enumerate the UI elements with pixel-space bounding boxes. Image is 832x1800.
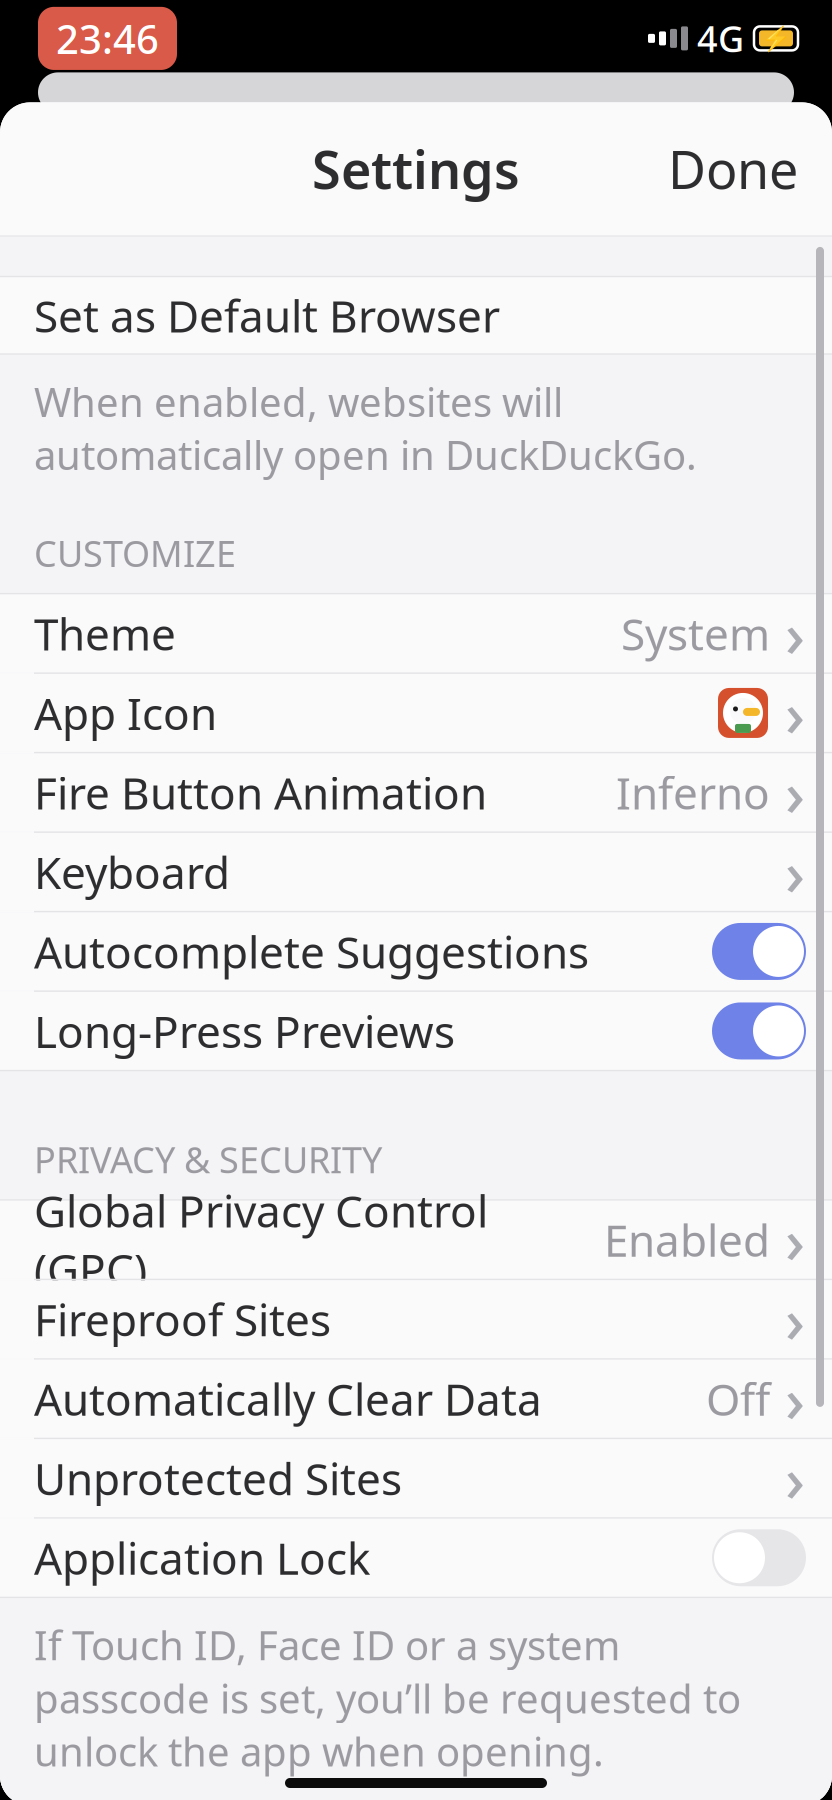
button[interactable]: Unprotected Sites — [0, 1439, 832, 1517]
staticText: Enabled — [604, 1210, 770, 1269]
staticText: Long-Press Previews — [34, 1002, 455, 1060]
staticText: CUSTOMIZE — [34, 529, 236, 577]
staticText: Keyboard — [34, 843, 230, 901]
staticText: Application Lock — [34, 1528, 370, 1587]
button[interactable]: Done — [648, 122, 818, 215]
staticText: App Icon — [34, 684, 217, 742]
staticText: Unprotected Sites — [34, 1449, 402, 1507]
staticText: 4G — [697, 14, 744, 62]
button[interactable]: Automatically Clear Data — [0, 1360, 832, 1438]
staticText: Done — [668, 134, 798, 203]
button[interactable]: App Icon — [0, 674, 832, 752]
staticText: › — [785, 593, 805, 674]
button[interactable]: Fireproof Sites — [0, 1280, 832, 1358]
staticText: When enabled, websites will automaticall… — [34, 375, 697, 481]
staticText: Off — [706, 1369, 770, 1428]
staticText: Set as Default Browser — [34, 286, 500, 345]
staticText: › — [785, 752, 805, 833]
button[interactable]: Application Lock — [0, 1519, 832, 1597]
staticText: Theme — [34, 604, 176, 663]
staticText: › — [785, 831, 805, 913]
staticText: › — [785, 672, 805, 754]
staticText: Inferno — [616, 763, 770, 822]
button[interactable]: Theme — [0, 594, 832, 672]
staticText: 23:46 — [56, 12, 159, 65]
button[interactable]: Global Privacy Control (GPC) — [0, 1201, 832, 1279]
staticText: › — [785, 1199, 805, 1280]
staticText: Fire Button Animation — [34, 763, 487, 822]
staticText: › — [785, 1278, 805, 1360]
button[interactable]: Fire Button Animation — [0, 753, 832, 831]
staticText: System — [621, 604, 770, 663]
staticText: Global Privacy Control (GPC) — [34, 1181, 488, 1298]
button[interactable]: Set as Default Browser — [0, 277, 832, 353]
staticText: Fireproof Sites — [34, 1290, 331, 1348]
staticText: Settings — [312, 134, 520, 203]
staticText: › — [785, 1437, 805, 1519]
staticText: ⚡ — [761, 25, 791, 52]
staticText: Automatically Clear Data — [34, 1369, 542, 1428]
staticText: PRIVACY & SECURITY — [34, 1135, 382, 1183]
button[interactable]: Keyboard — [0, 833, 832, 911]
staticText: Autocomplete Suggestions — [34, 922, 589, 981]
button[interactable]: Long-Press Previews — [0, 992, 832, 1070]
staticText: If Touch ID, Face ID or a system passcod… — [34, 1618, 741, 1778]
button[interactable]: Autocomplete Suggestions — [0, 912, 832, 990]
staticText: › — [785, 1358, 805, 1439]
